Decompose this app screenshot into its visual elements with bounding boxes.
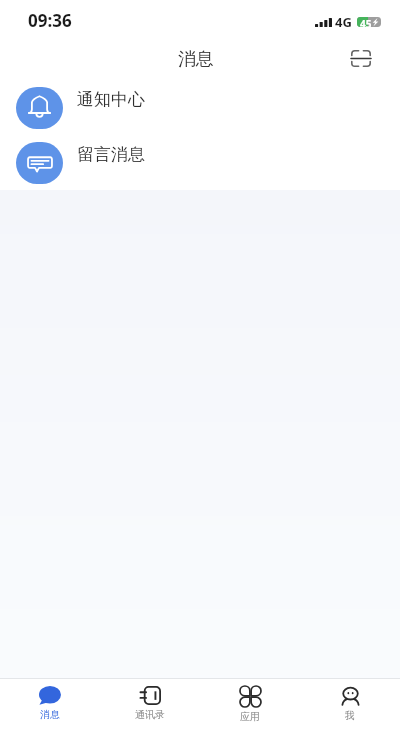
staticText: 通讯录 [135, 708, 165, 721]
staticText: 4G [335, 13, 352, 31]
button[interactable]: 应用 [200, 679, 300, 750]
staticText: 09:36 [28, 9, 72, 32]
button[interactable]: Scan QR code [346, 43, 376, 73]
button[interactable]: 我 [300, 679, 400, 750]
button[interactable]: 留言消息 [0, 135, 400, 190]
staticText: 消息 [40, 708, 60, 721]
staticText: 消息 [178, 48, 214, 71]
staticText: 留言消息 [77, 144, 145, 165]
button[interactable]: 通知中心 [0, 80, 400, 135]
button[interactable]: 消息 [0, 679, 100, 750]
staticText: 通知中心 [77, 89, 145, 110]
button[interactable]: 通讯录 [100, 679, 200, 750]
staticText: 45 [360, 17, 372, 27]
staticText: 我 [345, 709, 355, 722]
staticText: 应用 [240, 710, 260, 723]
